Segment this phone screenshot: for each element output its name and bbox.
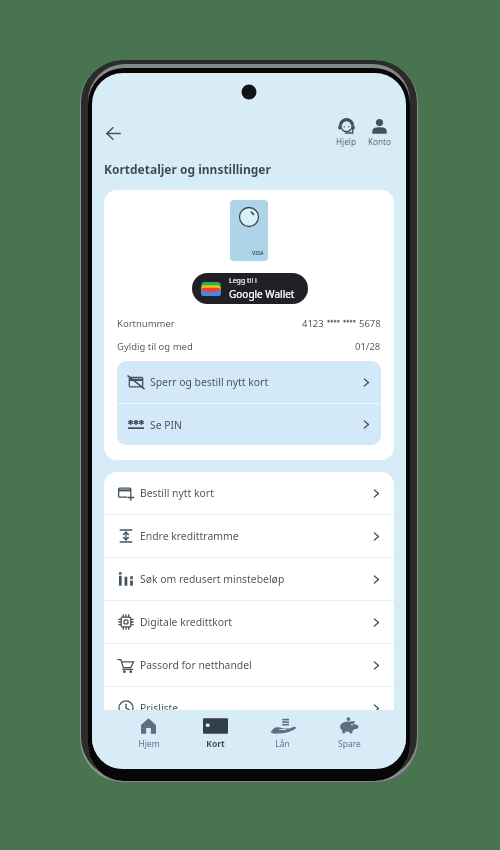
staticText: Kortnummer	[117, 317, 175, 330]
staticText: Konto	[368, 136, 391, 147]
button[interactable]: Prisliste	[104, 687, 394, 729]
staticText: Hjelp	[336, 136, 356, 147]
button[interactable]: Endre kredittramme	[104, 515, 394, 557]
staticText: 01/28	[355, 340, 381, 353]
button[interactable]: Bestill nytt kort	[104, 472, 394, 514]
button[interactable]: Passord for netthandel	[104, 644, 394, 686]
staticText: 4123	[302, 317, 324, 330]
button[interactable]: Lån	[249, 710, 316, 768]
button[interactable]: Hjelp	[331, 118, 361, 147]
button[interactable]: Tilbake	[98, 118, 128, 148]
button[interactable]: Se PIN	[117, 404, 381, 445]
button[interactable]: Sperr og bestill nytt kort	[117, 361, 381, 403]
staticText: Prisliste	[140, 701, 179, 715]
staticText: Passord for netthandel	[140, 658, 252, 672]
button[interactable]: Hjem	[115, 710, 182, 768]
staticText: Digitale kredittkort	[140, 615, 233, 629]
staticText: Kortdetaljer og innstillinger	[104, 161, 271, 177]
staticText: Google Wallet	[229, 287, 295, 301]
staticText: Legg til i	[229, 276, 257, 286]
button[interactable]: Søk om redusert minstebeløp	[104, 558, 394, 600]
staticText: Se PIN	[150, 418, 182, 432]
staticText: Bestill nytt kort	[140, 486, 214, 500]
staticText: Spare	[338, 738, 361, 750]
staticText: Lån	[275, 738, 290, 750]
staticText: Gyldig til og med	[117, 340, 193, 353]
staticText: 5678	[359, 317, 381, 330]
button[interactable]: Digitale kredittkort	[104, 601, 394, 643]
button[interactable]: Legg til i	[192, 273, 308, 304]
button[interactable]: Konto	[364, 118, 394, 147]
button[interactable]: Spare	[316, 710, 383, 768]
staticText: Søk om redusert minstebeløp	[140, 572, 285, 586]
staticText: VISA	[252, 250, 264, 257]
button[interactable]: Kort	[182, 710, 249, 768]
staticText: Sperr og bestill nytt kort	[150, 375, 269, 389]
staticText: Kort	[206, 738, 225, 750]
staticText: Endre kredittramme	[140, 529, 239, 543]
staticText: Hjem	[138, 738, 160, 750]
